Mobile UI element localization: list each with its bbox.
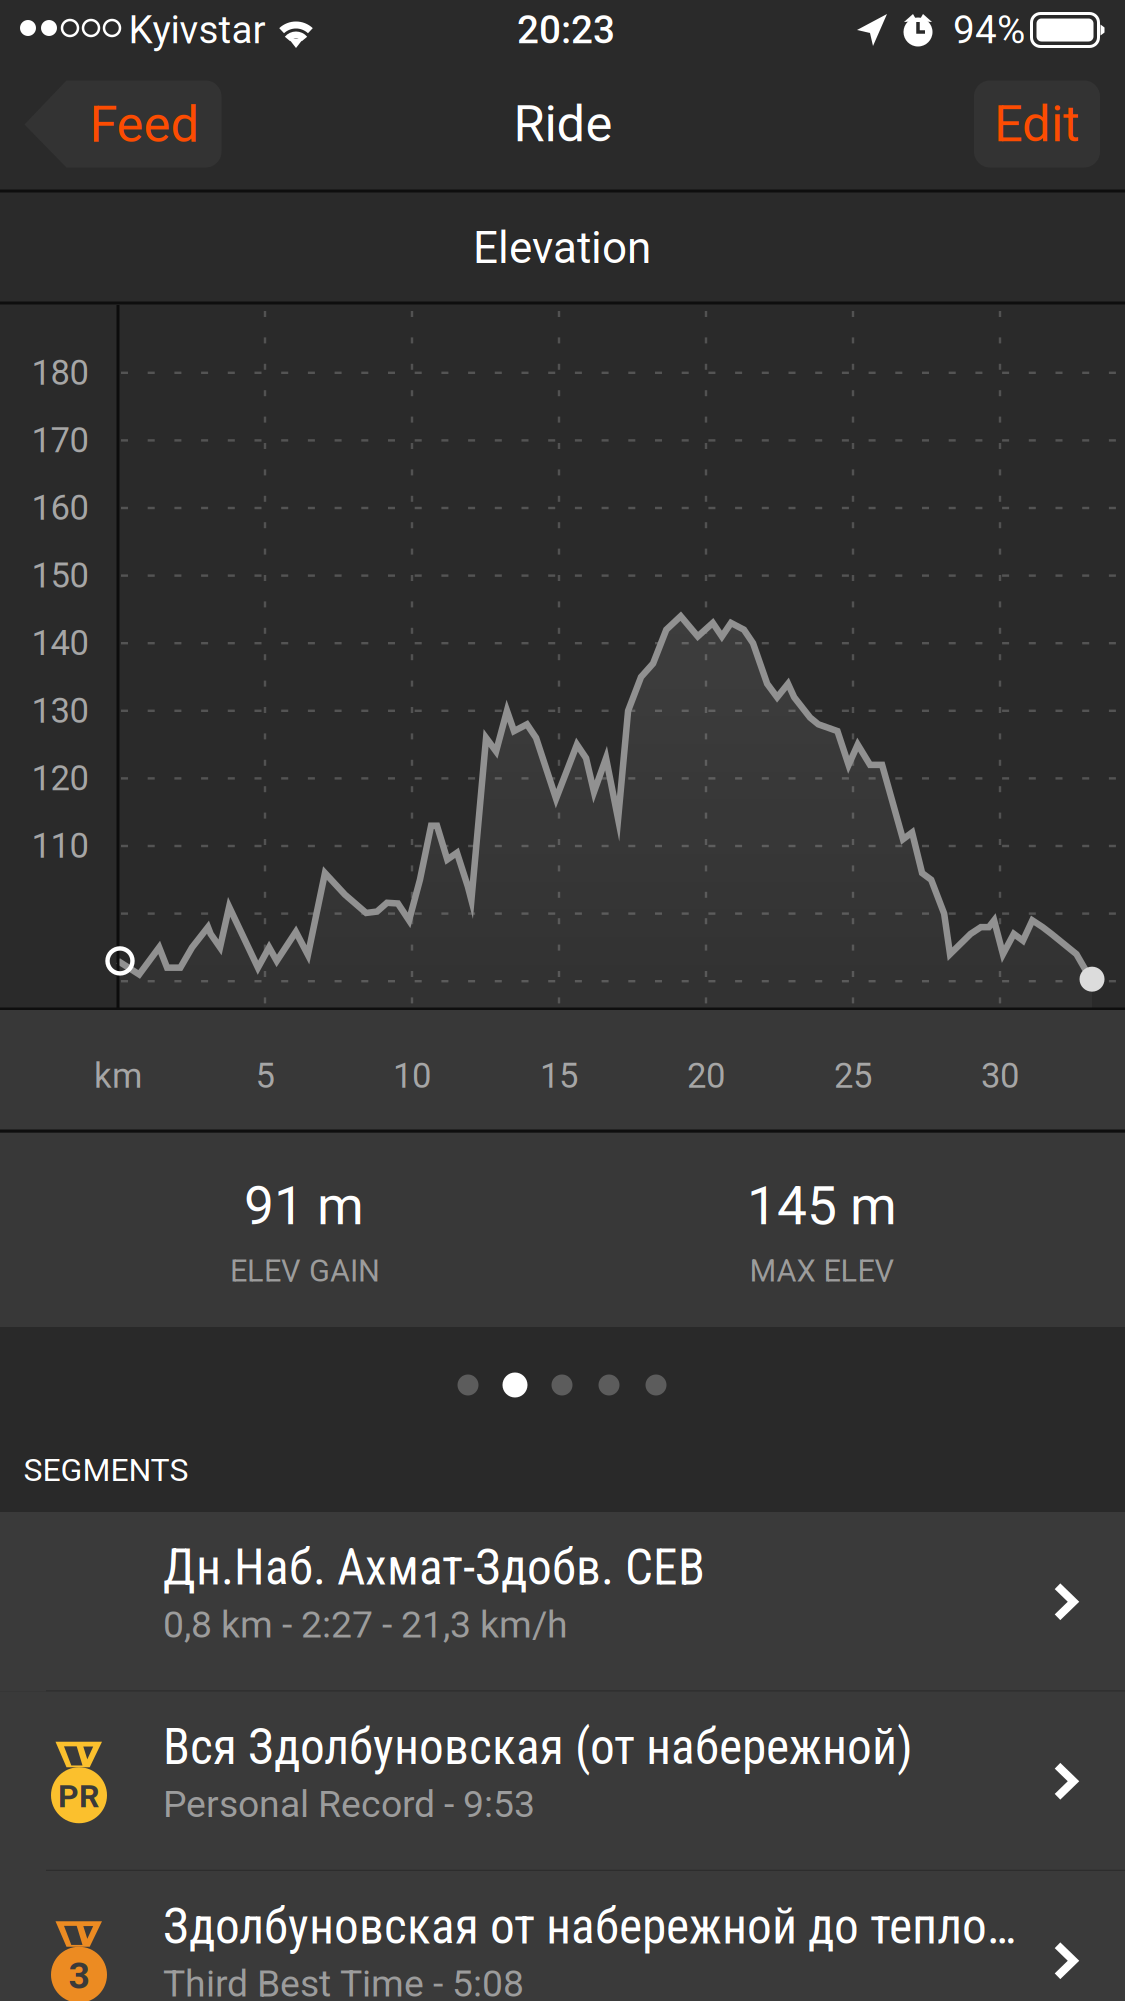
staticText: 110 xyxy=(31,826,88,866)
staticText: 5 xyxy=(255,1056,274,1096)
button[interactable]: Дн.Наб. Ахмат-Здобв. СЕВ xyxy=(0,1512,1125,1691)
staticText: 160 xyxy=(31,488,88,528)
staticText: 20 xyxy=(687,1056,725,1096)
button[interactable]: Edit xyxy=(974,80,1100,167)
staticText: Здолбуновская от набережной до тепло… xyxy=(163,1898,1016,1956)
staticText: 94% xyxy=(953,7,1025,53)
staticText: Elevation xyxy=(473,222,651,274)
button[interactable]: 3 xyxy=(0,1871,1125,2001)
staticText: Вся Здолбуновская (от набережной) xyxy=(163,1718,913,1776)
staticText: 91 m xyxy=(244,1175,364,1237)
staticText: 15 xyxy=(540,1056,578,1096)
staticText: 145 m xyxy=(747,1175,897,1237)
staticText: 150 xyxy=(31,555,88,596)
staticText: 0,8 km - 2:27 - 21,3 km/h xyxy=(163,1603,568,1647)
staticText: 3 xyxy=(68,1954,89,1998)
staticText: 10 xyxy=(393,1056,431,1096)
staticText: Дн.Наб. Ахмат-Здобв. СЕВ xyxy=(163,1539,705,1597)
staticText: 170 xyxy=(31,420,88,461)
staticText: 20:23 xyxy=(517,7,615,53)
staticText: 30 xyxy=(981,1056,1019,1096)
staticText: Personal Record - 9:53 xyxy=(163,1782,535,1826)
staticText: 130 xyxy=(31,690,88,731)
staticText: Kyivstar xyxy=(128,7,265,53)
staticText: 180 xyxy=(31,352,88,393)
staticText: MAX ELEV xyxy=(749,1253,894,1289)
staticText: 120 xyxy=(31,758,88,799)
button[interactable]: PR xyxy=(0,1691,1125,1871)
staticText: 25 xyxy=(834,1056,872,1096)
staticText: PR xyxy=(58,1777,100,1815)
staticText: ELEV GAIN xyxy=(230,1253,380,1289)
staticText: Edit xyxy=(994,94,1080,154)
staticText: Third Best Time - 5:08 xyxy=(163,1962,524,2001)
staticText: Ride xyxy=(513,94,612,154)
staticText: 140 xyxy=(31,623,88,663)
button[interactable]: Feed xyxy=(24,80,221,167)
staticText: Feed xyxy=(89,95,199,154)
staticText: SEGMENTS xyxy=(23,1451,188,1489)
staticText: km xyxy=(94,1056,142,1096)
